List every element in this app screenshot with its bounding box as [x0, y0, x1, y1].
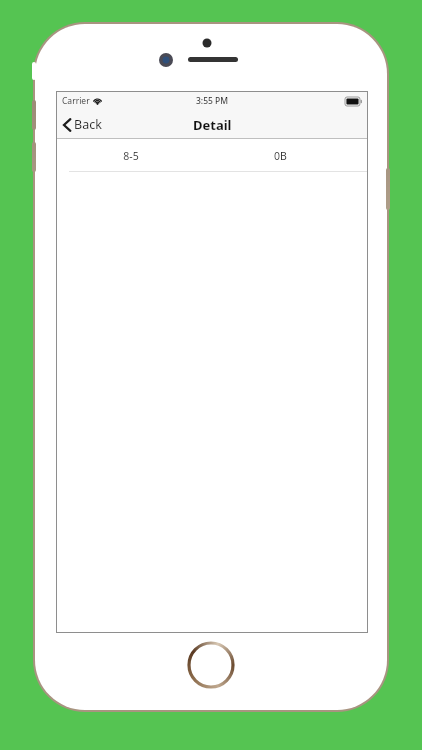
button[interactable]: 8-5: [57, 139, 367, 172]
button[interactable]: Home: [186, 640, 236, 690]
staticText: Detail: [193, 116, 232, 134]
staticText: 0B: [274, 149, 287, 163]
staticText: 8-5: [123, 149, 139, 163]
button[interactable]: Back: [57, 110, 110, 139]
staticText: Carrier: [62, 95, 90, 107]
staticText: Back: [74, 116, 102, 133]
staticText: 3:55 PM: [196, 95, 229, 107]
